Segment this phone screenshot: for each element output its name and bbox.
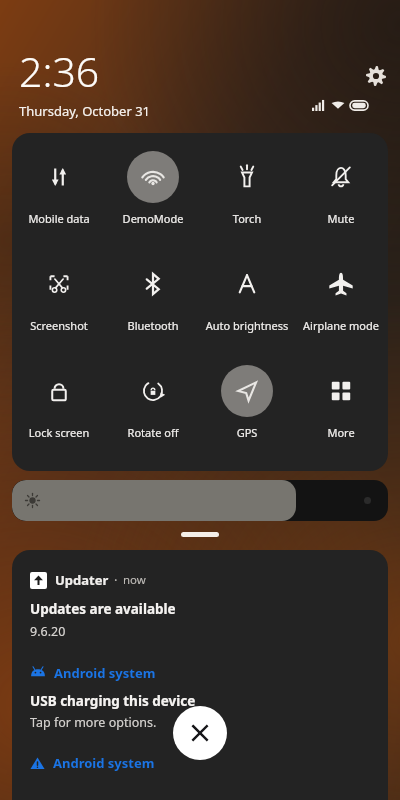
staticText: Tap for more options. bbox=[30, 714, 157, 731]
button[interactable]: Screenshot bbox=[12, 252, 106, 359]
button[interactable]: Clear all notifications bbox=[173, 706, 227, 760]
staticText: Updates are available bbox=[30, 600, 176, 618]
staticText: Android system bbox=[53, 754, 155, 772]
staticText: Thursday, October 31 bbox=[19, 102, 151, 120]
button[interactable]: Lock screen bbox=[12, 359, 106, 466]
button[interactable]: Brightness bbox=[12, 480, 388, 521]
button[interactable]: Mobile data bbox=[12, 145, 106, 252]
button[interactable]: Rotate off bbox=[106, 359, 200, 466]
button[interactable]: Airplane mode bbox=[294, 252, 388, 359]
staticText: Bluetooth bbox=[106, 318, 200, 333]
staticText: Auto brightness bbox=[200, 318, 294, 333]
staticText: Screenshot bbox=[12, 318, 106, 333]
staticText: Rotate off bbox=[106, 425, 200, 440]
button[interactable]: Updater bbox=[12, 550, 388, 650]
staticText: GPS bbox=[200, 425, 294, 440]
button[interactable]: Auto brightness bbox=[200, 252, 294, 359]
staticText: DemoMode bbox=[106, 211, 200, 226]
staticText: Mobile data bbox=[12, 211, 106, 226]
staticText: USB charging this device bbox=[30, 692, 196, 710]
button[interactable]: DemoMode bbox=[106, 145, 200, 252]
button[interactable]: Android system bbox=[12, 661, 388, 741]
staticText: · bbox=[114, 571, 118, 589]
button[interactable]: Bluetooth bbox=[106, 252, 200, 359]
staticText: 9.6.20 bbox=[30, 623, 66, 640]
button[interactable]: Settings bbox=[363, 63, 388, 88]
button[interactable]: Torch bbox=[200, 145, 294, 252]
button[interactable]: More bbox=[294, 359, 388, 466]
staticText: Torch bbox=[200, 211, 294, 226]
button[interactable]: Mute bbox=[294, 145, 388, 252]
staticText: Airplane mode bbox=[294, 318, 388, 333]
staticText: Updater bbox=[55, 571, 109, 589]
staticText: Mute bbox=[294, 211, 388, 226]
staticText: Lock screen bbox=[12, 425, 106, 440]
staticText: 2:36 bbox=[19, 43, 100, 99]
staticText: Android system bbox=[54, 664, 156, 682]
staticText: now bbox=[123, 572, 146, 588]
staticText: More bbox=[294, 425, 388, 440]
button[interactable]: Android system bbox=[12, 751, 388, 800]
button[interactable]: GPS bbox=[200, 359, 294, 466]
